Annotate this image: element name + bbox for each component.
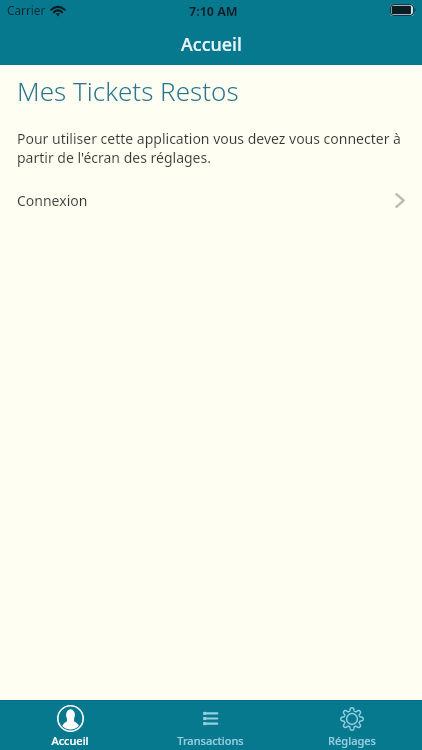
staticText: Connexion [17,191,88,210]
staticText: Pour utiliser cette application vous dev… [17,129,422,167]
staticText: Accueil [51,733,89,748]
button[interactable]: Transactions [140,700,281,750]
staticText: Accueil [181,32,242,57]
other: Réglages [340,707,364,731]
staticText: Transactions [177,733,244,748]
button[interactable]: Accueil [0,700,140,750]
staticText: Mes Tickets Restos [17,73,239,108]
staticText: Réglages [328,733,376,748]
staticText: Carrier [7,2,46,18]
button[interactable]: Réglages [281,700,422,750]
other: Ouvrir [395,193,405,208]
other: Transactions [202,710,219,727]
staticText: 7:10 AM [189,3,238,20]
other: Accueil [57,705,84,732]
button[interactable]: Connexion [0,182,422,218]
